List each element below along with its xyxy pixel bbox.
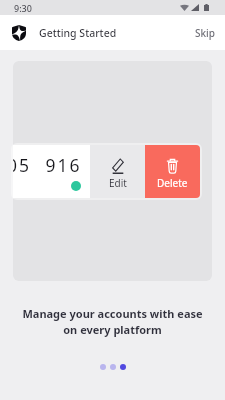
staticText: Edit (109, 176, 127, 190)
staticText: 305 916 (13, 153, 115, 177)
staticText: Delete (157, 176, 188, 190)
staticText: Skip (195, 26, 215, 40)
staticText: Getting Started (39, 26, 117, 40)
button[interactable]: 305 916 (13, 145, 90, 198)
button[interactable]: Delete (145, 145, 200, 198)
staticText: Manage your accounts with ease on every … (0, 306, 225, 337)
staticText: 9:30 (14, 2, 32, 14)
button[interactable]: Skip (185, 20, 225, 46)
button[interactable]: Edit (90, 145, 145, 198)
